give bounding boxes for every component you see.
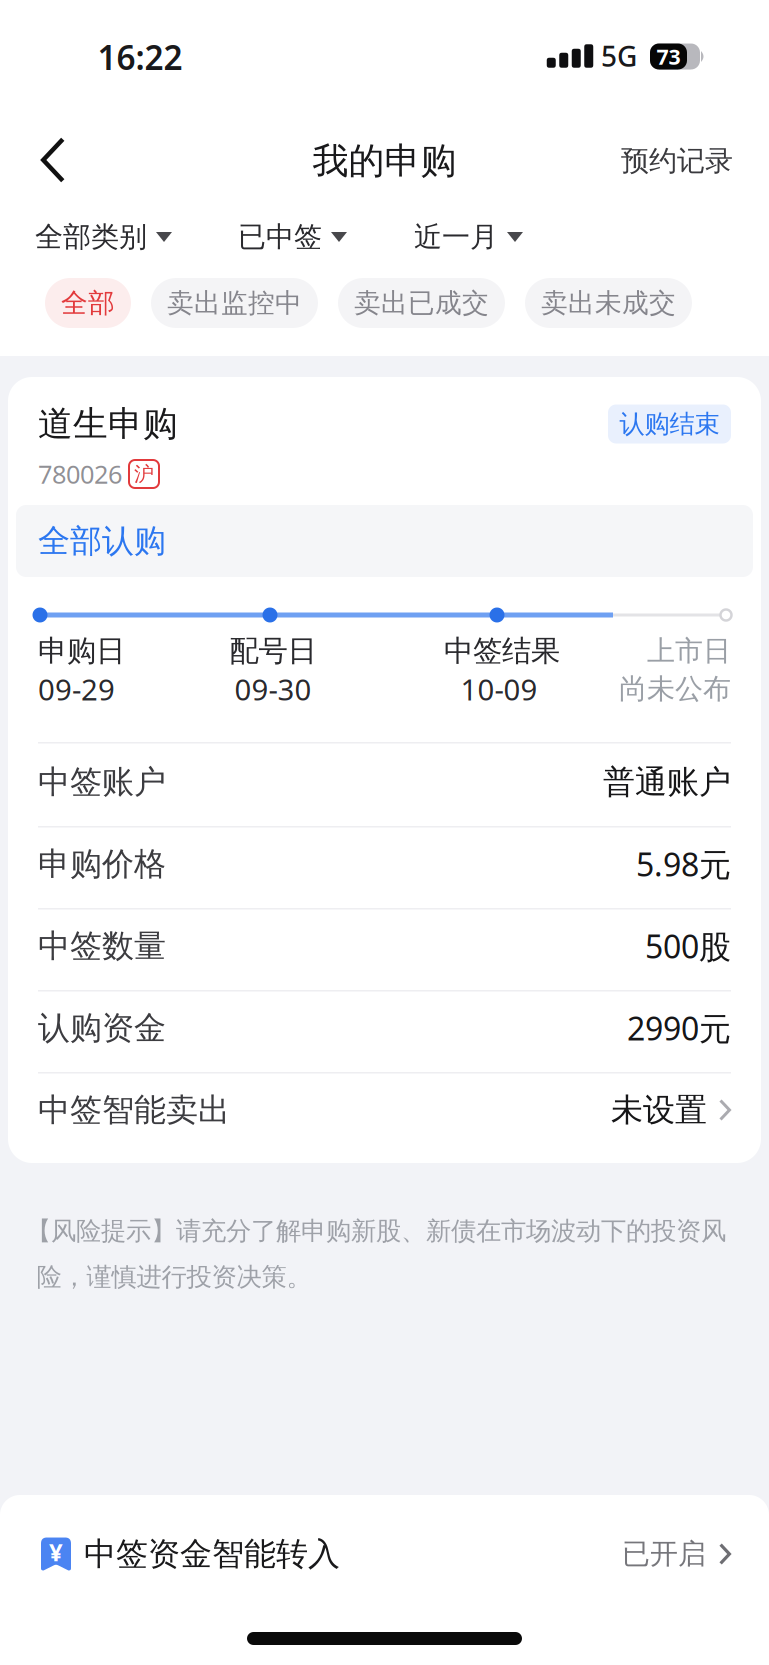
staticText: 我的申购 (312, 139, 456, 183)
staticText: 10-09 (460, 669, 537, 708)
staticText: 已中签 (238, 220, 322, 254)
staticText: 申购日 (38, 633, 125, 669)
button[interactable]: 近一月 (414, 220, 523, 254)
button[interactable]: 已中签 (238, 220, 347, 254)
staticText: 卖出未成交 (541, 287, 676, 319)
staticText: 09-30 (234, 669, 311, 708)
button[interactable]: 全部类别 (35, 220, 172, 254)
staticText: 普通账户 (603, 762, 731, 802)
staticText: 16:22 (97, 35, 182, 79)
staticText: 认购资金 (38, 1008, 166, 1048)
staticText: 73 (656, 42, 680, 71)
button[interactable]: 卖出已成交 (338, 278, 505, 328)
staticText: 险，谨慎进行投资决策。 (36, 1261, 311, 1292)
staticText: 5G (601, 37, 637, 75)
staticText: 【风险提示】请充分了解申购新股、新债在市场波动下的投资风 (26, 1215, 726, 1246)
staticText: 尚未公布 (619, 672, 731, 706)
staticText: 全部认购 (38, 521, 166, 561)
staticText: 近一月 (414, 220, 498, 254)
staticText: 全部类别 (35, 220, 147, 254)
button[interactable]: 预约记录 (602, 135, 752, 187)
staticText: 中签账户 (38, 762, 166, 802)
button[interactable]: 全部 (45, 278, 131, 328)
staticText: 中签智能卖出 (38, 1090, 230, 1130)
staticText: 2990元 (627, 1007, 731, 1049)
staticText: 5.98元 (636, 843, 731, 885)
staticText: 卖出已成交 (354, 287, 489, 319)
staticText: 中签数量 (38, 926, 166, 966)
button[interactable] (23, 130, 83, 190)
button[interactable]: 卖出未成交 (525, 278, 692, 328)
button[interactable]: ¥ (38, 1514, 731, 1594)
staticText: 未设置 (611, 1090, 707, 1130)
staticText: 沪 (134, 462, 154, 486)
staticText: 认购结束 (619, 408, 719, 439)
staticText: 500股 (645, 925, 731, 967)
staticText: 中签资金智能转入 (84, 1534, 340, 1574)
staticText: 全部 (61, 287, 115, 319)
staticText: 申购价格 (38, 844, 166, 884)
staticText: 卖出监控中 (167, 287, 302, 319)
staticText: 已开启 (622, 1537, 706, 1571)
staticText: 道生申购 (38, 403, 178, 445)
staticText: 中签结果 (444, 633, 560, 669)
staticText: 上市日 (647, 634, 731, 668)
button[interactable]: 中签智能卖出 (38, 1069, 731, 1151)
staticText: ¥ (49, 1536, 63, 1568)
staticText: 780026 (38, 457, 122, 491)
staticText: 配号日 (229, 633, 316, 669)
staticText: 预约记录 (621, 144, 733, 178)
button[interactable]: 卖出监控中 (151, 278, 318, 328)
staticText: 09-29 (38, 669, 115, 708)
button[interactable]: 全部认购 (16, 505, 753, 577)
